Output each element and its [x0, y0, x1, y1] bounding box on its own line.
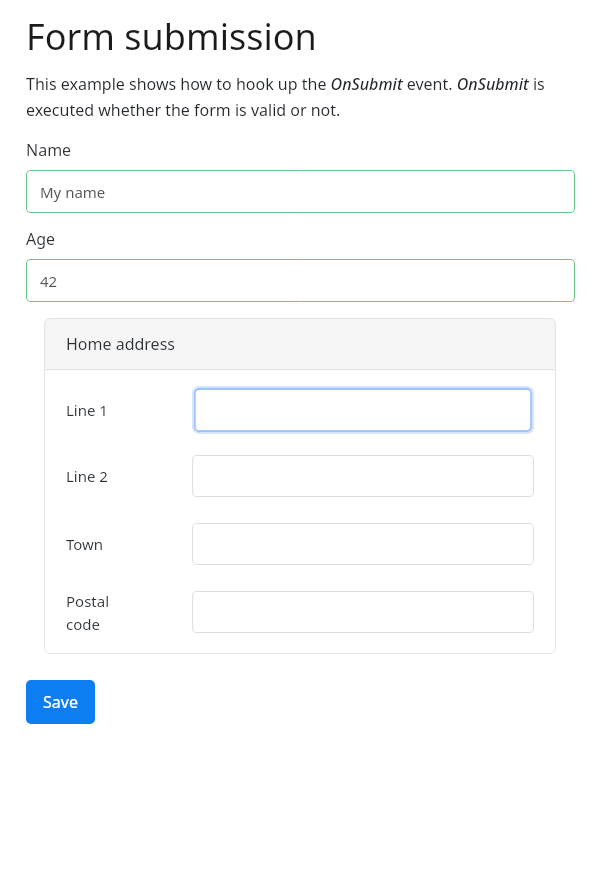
staticText: Town: [66, 534, 104, 554]
staticText: Age: [26, 228, 56, 250]
staticText: Home address: [66, 333, 175, 355]
staticText: Postal code: [66, 591, 110, 634]
button[interactable]: Save: [26, 680, 95, 724]
staticText: Save: [43, 691, 78, 713]
button[interactable]: My name: [26, 170, 575, 213]
button[interactable]: Postal code: [192, 591, 534, 633]
staticText: Line 2: [66, 466, 108, 486]
button[interactable]: 42: [26, 259, 575, 302]
button[interactable]: Line 2: [192, 455, 534, 497]
staticText: Name: [26, 139, 72, 161]
staticText: My name: [40, 182, 106, 202]
staticText: 42: [40, 271, 58, 291]
staticText: Line 1: [66, 400, 108, 420]
button[interactable]: Town: [192, 523, 534, 565]
staticText: Form submission: [26, 12, 317, 61]
staticText: This example shows how to hook up the On…: [26, 73, 582, 121]
button[interactable]: Line 1: [192, 386, 534, 434]
